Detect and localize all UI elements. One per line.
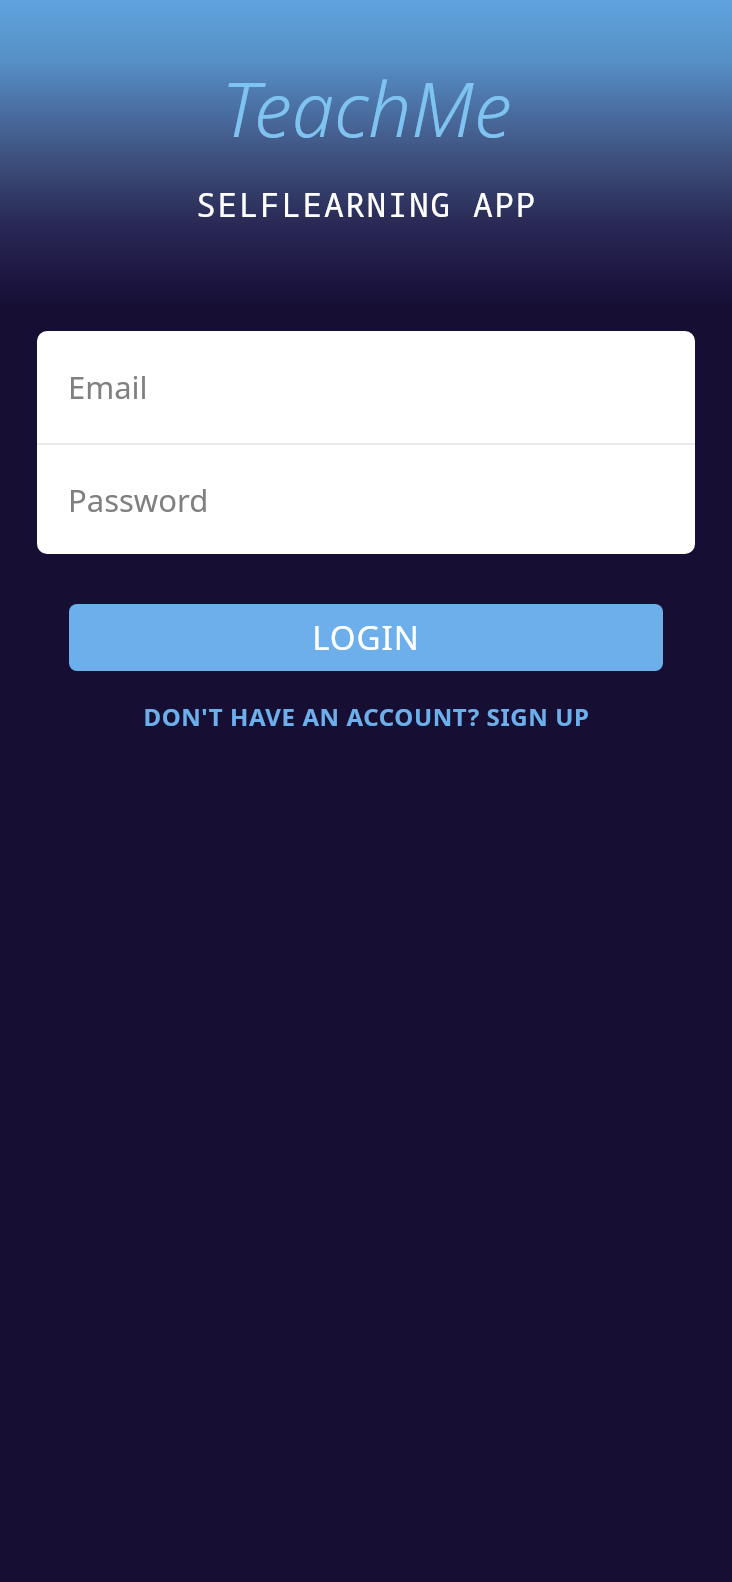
staticText: TeachMe xyxy=(221,56,512,160)
staticText: Email xyxy=(68,366,148,408)
button[interactable]: DON'T HAVE AN ACCOUNT? SIGN UP xyxy=(131,694,602,739)
button[interactable]: Email xyxy=(37,331,695,443)
staticText: LOGIN xyxy=(312,615,420,660)
staticText: DON'T HAVE AN ACCOUNT? SIGN UP xyxy=(143,700,590,733)
staticText: SELFLEARNING APP xyxy=(196,182,537,227)
button[interactable]: LOGIN xyxy=(69,604,663,671)
staticText: Password xyxy=(68,479,209,521)
button[interactable]: Password xyxy=(37,445,695,554)
